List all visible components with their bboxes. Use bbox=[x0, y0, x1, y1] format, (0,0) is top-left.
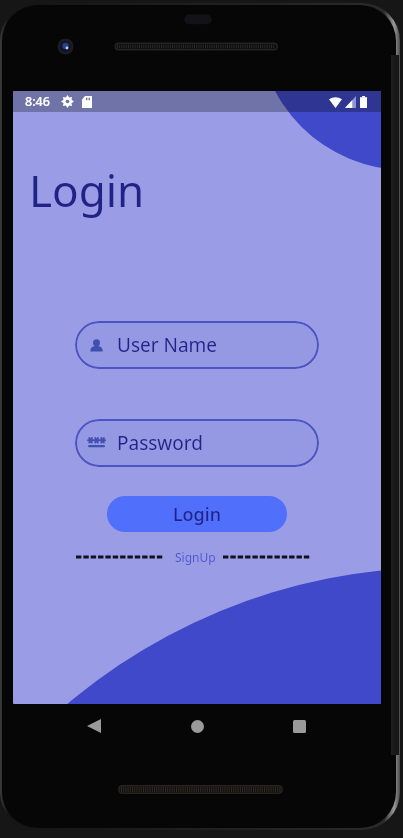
staticText: Password bbox=[117, 430, 203, 456]
staticText: User Name bbox=[117, 332, 218, 358]
button[interactable]: User Name bbox=[75, 321, 319, 369]
button[interactable]: Home bbox=[177, 706, 217, 746]
button[interactable]: Recent apps bbox=[279, 706, 319, 746]
staticText: 8:46 bbox=[25, 93, 50, 110]
button[interactable]: SignUp bbox=[175, 549, 216, 565]
staticText: Login bbox=[173, 502, 221, 527]
button[interactable]: Back bbox=[74, 706, 114, 746]
button[interactable]: Login bbox=[107, 496, 287, 532]
staticText: Login bbox=[29, 160, 145, 220]
button[interactable]: Password bbox=[75, 419, 319, 467]
